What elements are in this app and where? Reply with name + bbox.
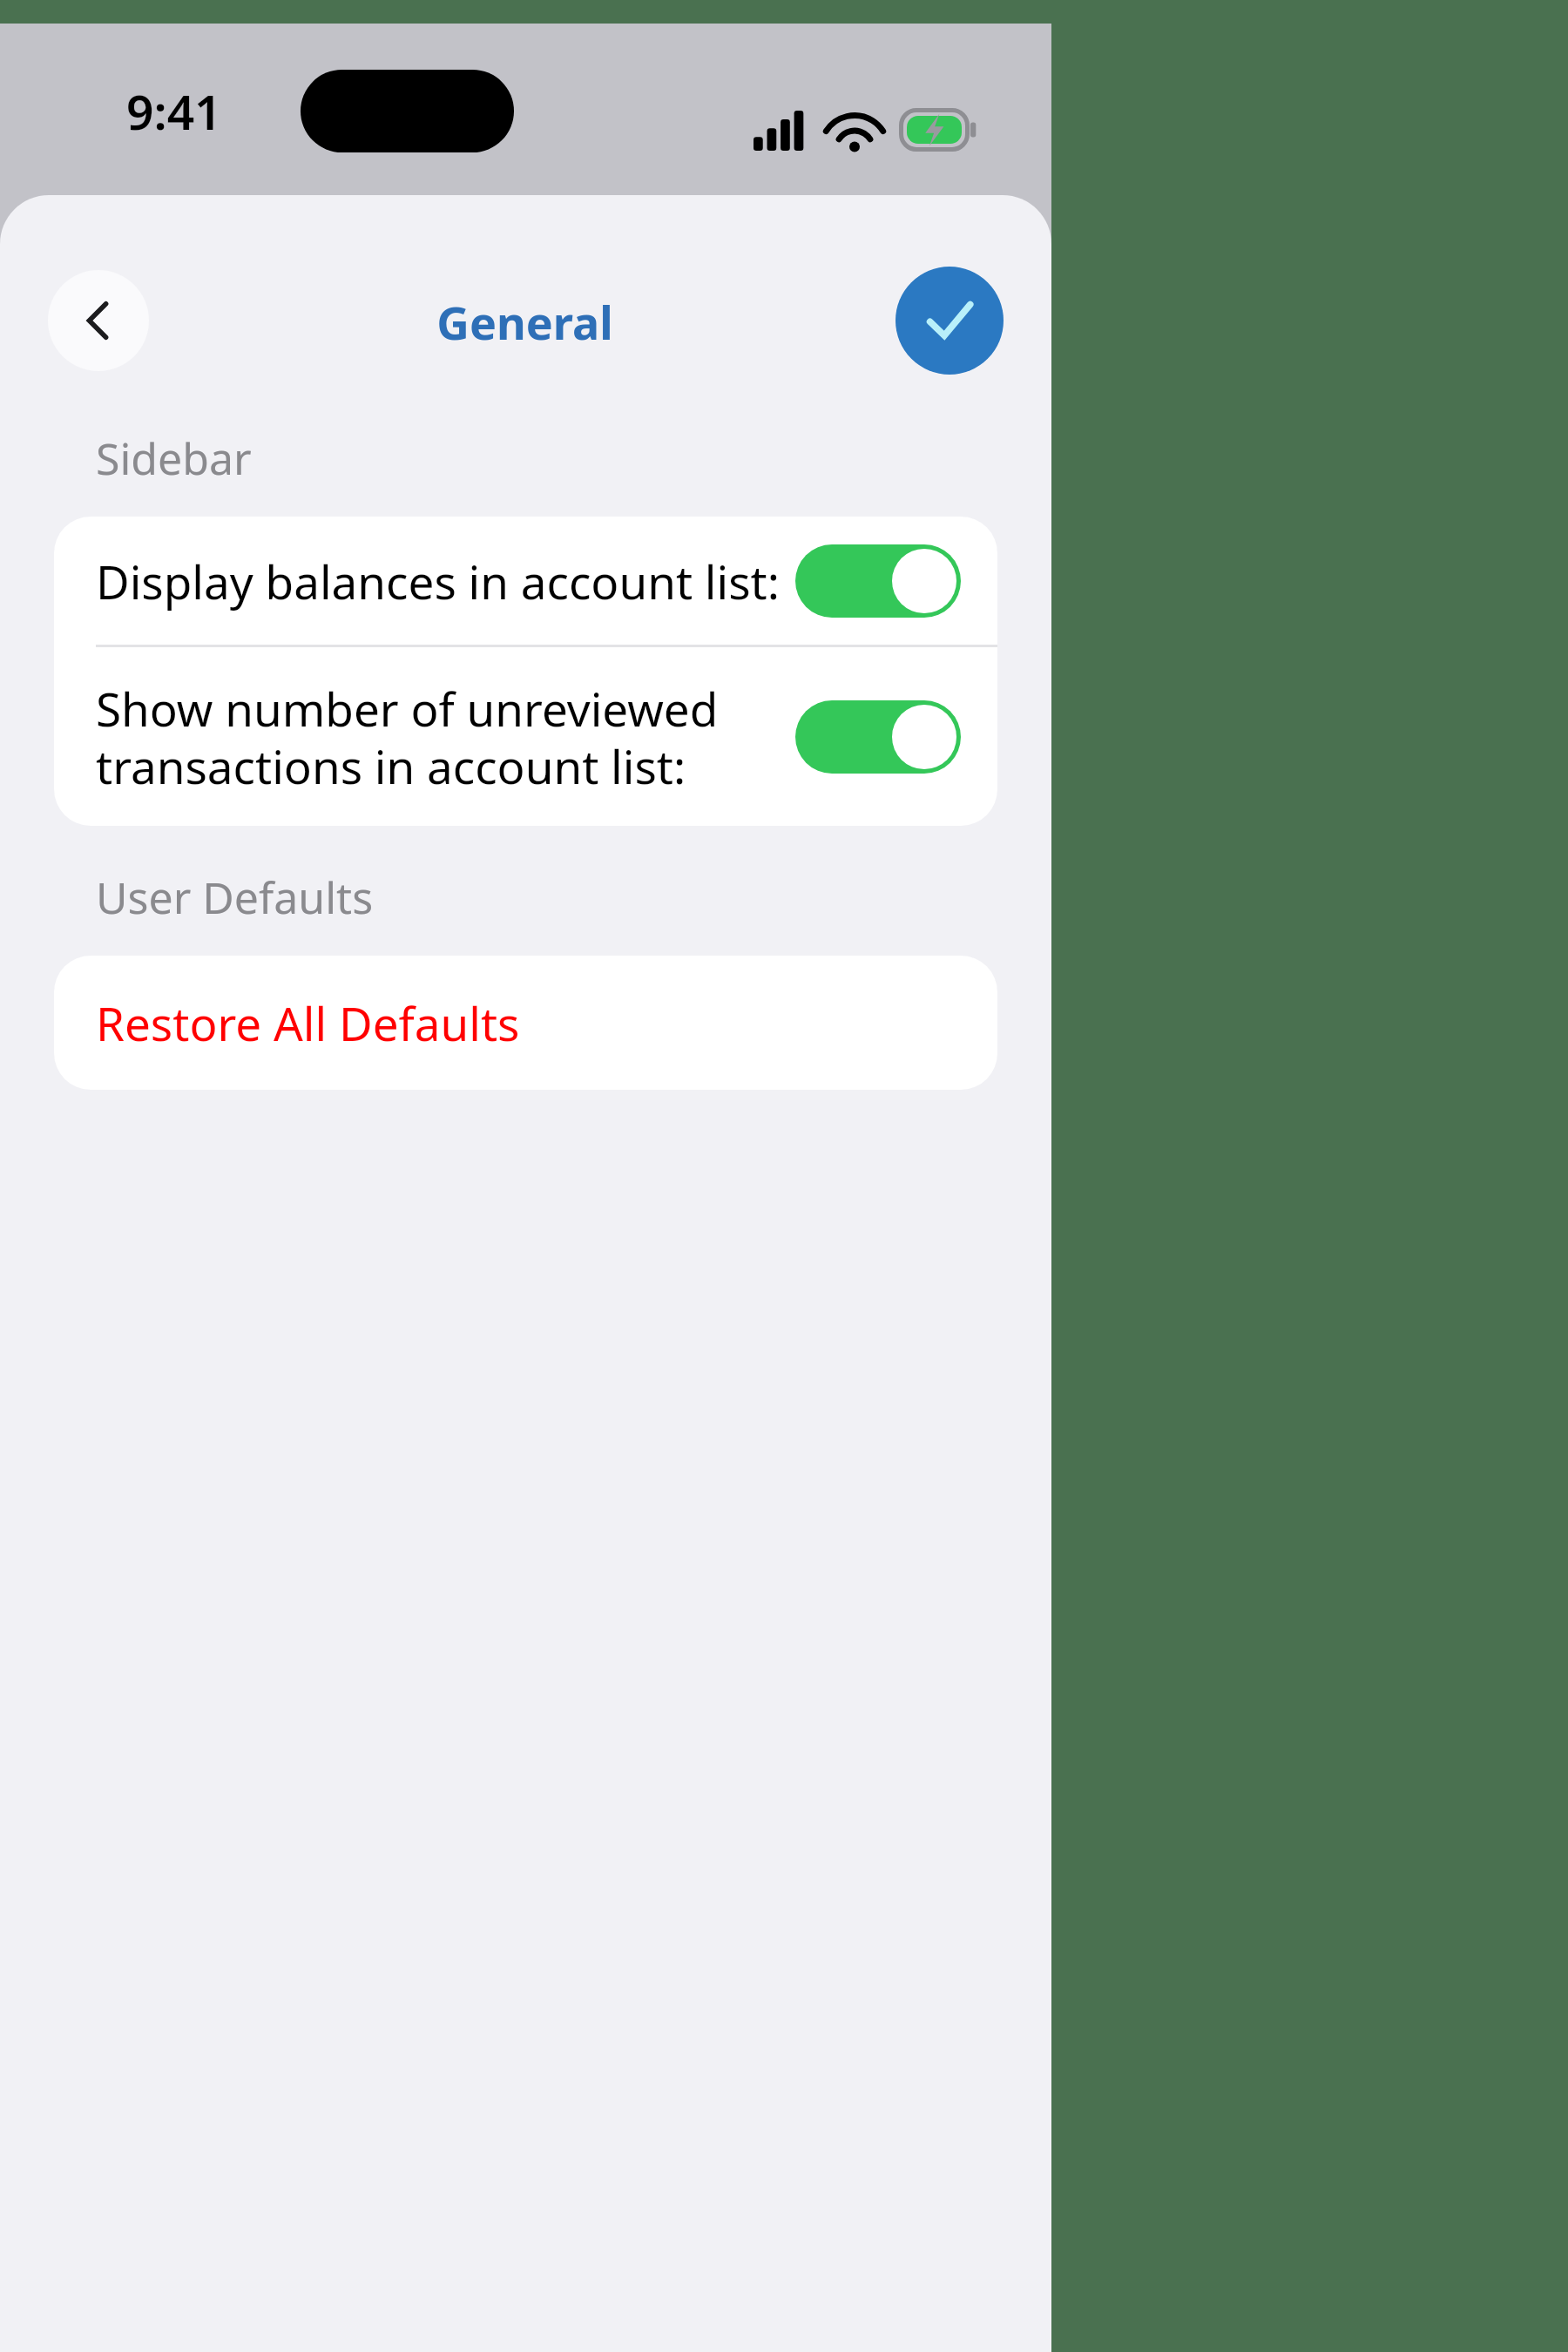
button[interactable]: Display balances in account list:	[54, 517, 997, 645]
staticText: Show number of unreviewed transactions i…	[96, 677, 781, 797]
button[interactable]: Back	[48, 270, 149, 371]
button[interactable]: Toggle, on	[795, 700, 961, 774]
staticText: Display balances in account list:	[96, 550, 781, 612]
button[interactable]: Show number of unreviewed transactions i…	[54, 647, 997, 826]
staticText: User Defaults	[96, 868, 374, 927]
button[interactable]: Toggle, on	[795, 544, 961, 618]
button[interactable]: Restore All Defaults	[54, 956, 997, 1090]
staticText: 9:41	[126, 78, 222, 144]
button[interactable]: Done	[896, 267, 1004, 375]
staticText: Restore All Defaults	[96, 991, 520, 1054]
staticText: Sidebar	[96, 429, 252, 488]
staticText: General	[436, 291, 613, 353]
